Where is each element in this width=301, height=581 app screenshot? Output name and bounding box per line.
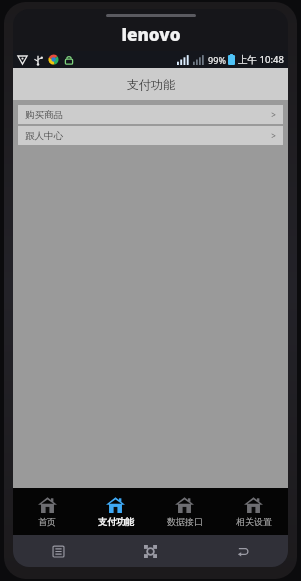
button[interactable]: 跟人中心: [18, 126, 283, 145]
staticText: >: [271, 130, 276, 141]
staticText: >: [271, 109, 276, 120]
staticText: 跟人中心: [25, 130, 63, 142]
staticText: 首页: [38, 516, 56, 527]
staticText: lenovo: [121, 23, 181, 46]
button[interactable]: 支付功能: [81, 488, 150, 535]
staticText: 购买商品: [25, 109, 63, 121]
button[interactable]: 购买商品: [18, 105, 283, 124]
button[interactable]: 数据接口: [150, 488, 219, 535]
staticText: 支付功能: [98, 516, 134, 527]
button[interactable]: Menu: [13, 535, 104, 567]
staticText: 上午 10:48: [238, 53, 284, 66]
staticText: 支付功能: [127, 77, 175, 92]
button[interactable]: 相关设置: [219, 488, 288, 535]
button[interactable]: Home: [104, 535, 196, 567]
staticText: 数据接口: [167, 516, 203, 527]
button[interactable]: 首页: [13, 488, 81, 535]
staticText: 99%: [208, 54, 226, 66]
staticText: 相关设置: [236, 516, 272, 527]
button[interactable]: Back: [196, 535, 288, 567]
